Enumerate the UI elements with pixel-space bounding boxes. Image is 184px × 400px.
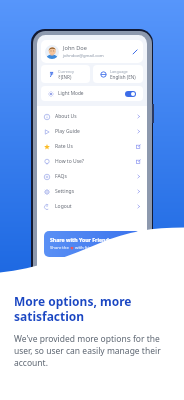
button[interactable]: Play Guide (37, 124, 147, 139)
staticText: Settings (55, 188, 136, 195)
button[interactable]: Logout (37, 199, 147, 214)
staticText: ₹(INR) (58, 74, 72, 80)
button[interactable]: Share with Your Friends (44, 231, 140, 257)
staticText: Light Mode (58, 90, 125, 97)
button[interactable]: Light Mode (41, 86, 143, 101)
button[interactable]: FAQs (37, 169, 147, 184)
staticText: FAQs (55, 173, 136, 180)
button[interactable]: How to Use? (37, 154, 147, 169)
staticText: Currency (58, 69, 75, 74)
staticText: About Us (55, 113, 136, 120)
staticText: Logout (55, 203, 136, 210)
staticText: Share with Your Friends (50, 236, 112, 243)
staticText: Language (110, 69, 128, 74)
staticText: Share the (50, 245, 70, 251)
button[interactable]: Rate Us (37, 139, 147, 154)
staticText: More options, more satisfaction (14, 293, 170, 324)
button[interactable]: Edit profile (131, 48, 139, 56)
staticText: How to Use? (55, 158, 136, 165)
button[interactable]: Currency (41, 65, 90, 83)
staticText: John Doe (63, 44, 87, 52)
staticText: with friends (74, 245, 99, 251)
staticText: Rate Us (55, 143, 136, 150)
staticText: English (EN) (110, 74, 136, 80)
button[interactable]: About Us (37, 109, 147, 124)
staticText: We've provided more options for the user… (14, 333, 170, 369)
staticText: johndoe@gmail.com (63, 53, 104, 59)
button[interactable]: Settings (37, 184, 147, 199)
button[interactable]: John Doe (41, 40, 143, 63)
staticText: Play Guide (55, 128, 136, 135)
button[interactable]: Language (93, 65, 143, 83)
